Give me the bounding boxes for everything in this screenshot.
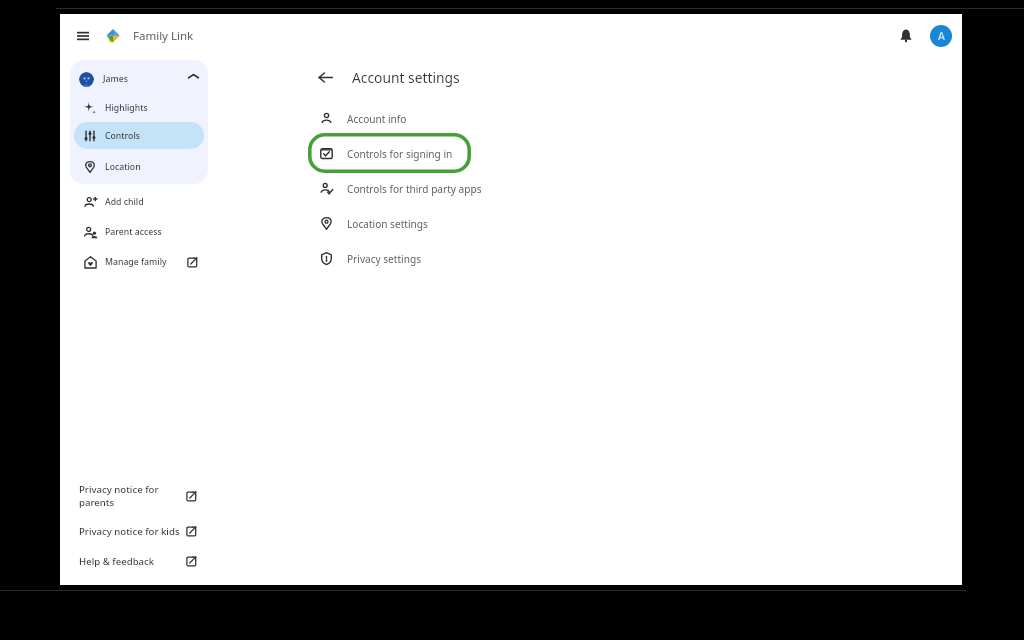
button[interactable]: Controls for third party apps [312,171,542,206]
button[interactable]: Location settings [312,206,542,241]
button[interactable]: Highlights [74,94,204,121]
button[interactable]: Manage family [70,247,208,277]
staticText: Parent access [105,226,162,238]
button[interactable]: Location [74,153,204,180]
staticText: Add child [105,196,144,208]
button[interactable]: Back [312,64,338,90]
button[interactable]: Privacy notice for kids [79,523,214,540]
button[interactable]: Menu [69,22,97,50]
staticText: Account info [347,112,407,126]
button[interactable]: Notifications [893,23,919,49]
staticText: Location [105,161,141,173]
button[interactable]: Parent access [70,217,208,247]
staticText: James [103,73,128,85]
button[interactable]: Add child [70,187,208,217]
staticText: Location settings [347,217,428,231]
staticText: Family Link [133,28,194,44]
staticText: Manage family [105,256,167,268]
staticText: Privacy notice for parents [79,483,186,509]
staticText: Privacy settings [347,252,421,266]
button[interactable]: Controls [74,122,204,149]
staticText: Controls [105,130,140,142]
staticText: Controls for signing in [347,147,453,161]
button[interactable]: Privacy settings [312,241,542,276]
button[interactable]: Account [930,25,952,47]
staticText: Controls for third party apps [347,182,482,196]
button[interactable]: Controls for signing in [312,136,542,171]
button[interactable]: Account info [312,101,542,136]
staticText: A [938,29,945,43]
button[interactable]: Privacy notice for parents [79,481,214,511]
staticText: Privacy notice for kids [79,525,186,538]
button[interactable]: James [70,64,208,94]
staticText: Help & feedback [79,555,186,568]
staticText: Account settings [352,68,460,87]
staticText: Highlights [105,102,148,114]
button[interactable]: Help & feedback [79,553,214,570]
